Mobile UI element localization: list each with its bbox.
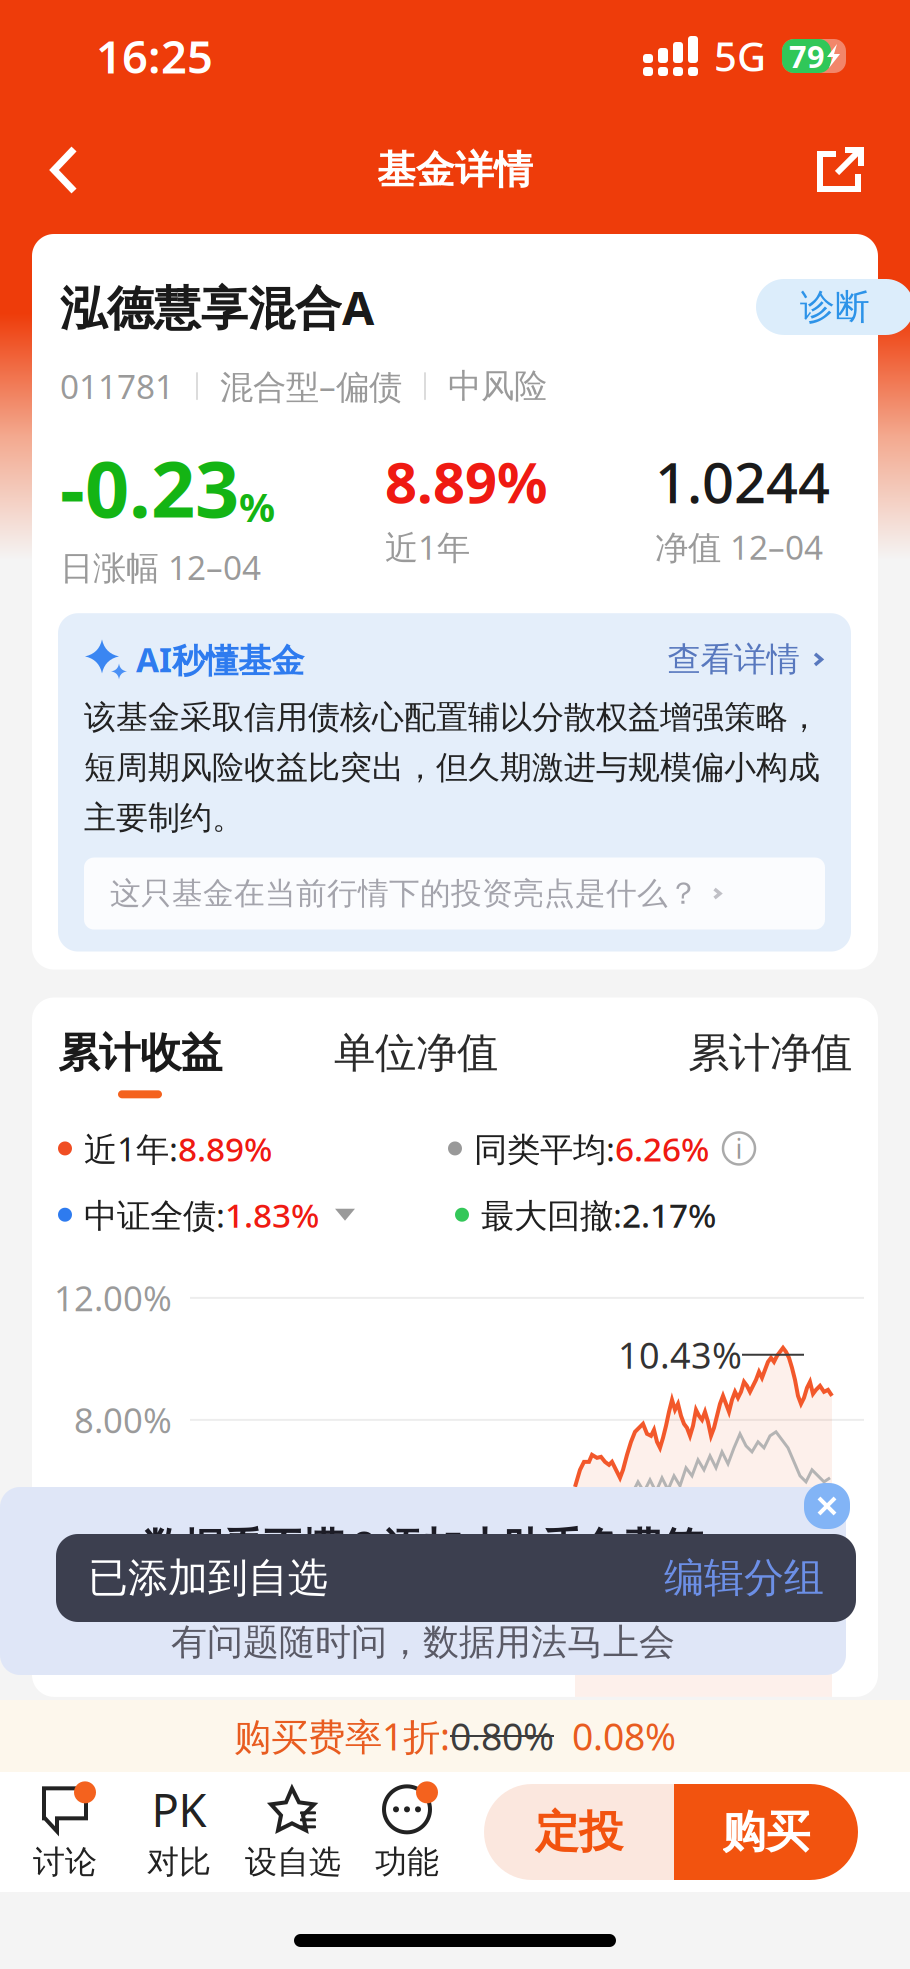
staticText: 2.17%: [622, 1193, 716, 1237]
staticText: 8.00%: [74, 1397, 172, 1443]
staticText: 购买费率1折:: [234, 1711, 450, 1761]
staticText: 基金详情: [377, 146, 533, 194]
staticText: 日涨幅 12–04: [60, 545, 261, 589]
staticText: 累计净值: [688, 1027, 852, 1078]
staticText: 混合型–偏债: [220, 364, 402, 408]
staticText: %: [239, 480, 275, 533]
staticText: 8.89%: [385, 444, 548, 519]
staticText: 1.83%: [225, 1193, 319, 1237]
staticText: 近1年:: [84, 1126, 178, 1171]
staticText: 编辑分组: [664, 1553, 824, 1602]
staticText: 诊断: [800, 286, 870, 328]
button[interactable]: 编辑分组: [664, 1553, 824, 1602]
staticText: AI秒懂基金: [136, 637, 304, 682]
staticText: 数据看不懂？添加小助手免费答: [143, 1523, 703, 1572]
button[interactable]: Back: [26, 125, 102, 215]
staticText: 累计收益: [58, 1027, 222, 1078]
staticText: 净值 12–04: [655, 525, 823, 569]
staticText: PK: [151, 1779, 206, 1839]
staticText: 这只基金在当前行情下的投资亮点是什么？: [110, 875, 699, 912]
staticText: 近1年: [385, 525, 470, 569]
staticText: 6.26%: [615, 1126, 709, 1171]
staticText: 讨论: [33, 1842, 97, 1882]
button[interactable]: 诊断: [756, 279, 878, 335]
staticText: 中风险: [448, 366, 547, 406]
staticText: 12.00%: [54, 1275, 172, 1321]
button[interactable]: 查看详情: [667, 639, 825, 680]
staticText: 有问题随时问，数据用法马上会: [171, 1620, 675, 1664]
button[interactable]: 讨论: [8, 1782, 122, 1882]
staticText: 查看详情: [667, 639, 799, 680]
staticText: 已添加到自选: [88, 1553, 328, 1602]
staticText: 011781: [60, 364, 174, 408]
staticText: 0.08%: [572, 1711, 676, 1761]
button[interactable]: 设自选: [236, 1782, 350, 1882]
staticText: 单位净值: [334, 1027, 498, 1078]
button[interactable]: PK: [122, 1782, 236, 1882]
staticText: 主要制约。: [84, 798, 244, 837]
staticText: 购买: [722, 1805, 810, 1859]
staticText: 79: [789, 36, 825, 76]
button[interactable]: Share: [802, 125, 878, 215]
staticText: 8.89%: [178, 1126, 272, 1171]
staticText: 1.0244: [655, 444, 830, 519]
staticText: 5G: [714, 29, 766, 82]
staticText: 泓德慧享混合A: [60, 276, 374, 338]
staticText: 定投: [535, 1805, 623, 1859]
staticText: 对比: [147, 1842, 211, 1882]
button[interactable]: 定投: [484, 1784, 674, 1880]
staticText: 中证全债:: [84, 1193, 225, 1237]
staticText: 该基金采取信用债核心配置辅以分散权益增强策略，: [84, 698, 820, 737]
staticText: 功能: [375, 1842, 439, 1882]
button[interactable]: 这只基金在当前行情下的投资亮点是什么？: [84, 857, 825, 929]
button[interactable]: 购买: [674, 1784, 858, 1880]
staticText: -0.23: [60, 436, 239, 539]
staticText: 同类平均:: [474, 1126, 615, 1171]
staticText: 16:25: [96, 26, 213, 86]
button[interactable]: 功能: [350, 1782, 464, 1882]
button[interactable]: Close: [804, 1483, 850, 1529]
staticText: 10.43%: [618, 1331, 742, 1379]
staticText: 0.80%: [450, 1711, 554, 1761]
staticText: 设自选: [245, 1842, 341, 1882]
staticText: i: [735, 1131, 742, 1166]
staticText: 短周期风险收益比突出，但久期激进与规模偏小构成: [84, 748, 820, 787]
staticText: 最大回撤:: [481, 1193, 622, 1237]
